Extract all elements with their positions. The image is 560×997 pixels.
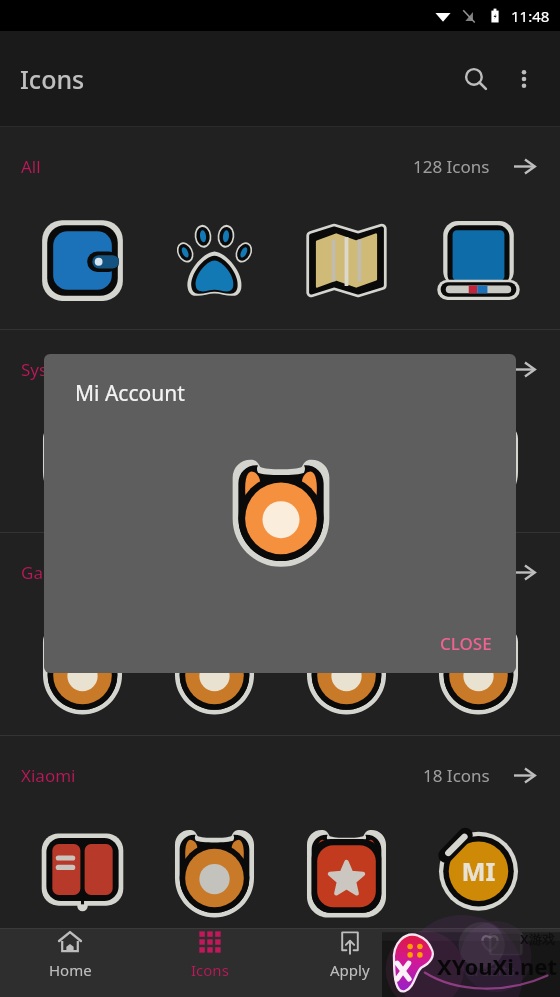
staticText: XYouXi.net: [437, 951, 557, 981]
other: Open Xiaomi: [513, 764, 536, 787]
staticText: Xiaomi: [21, 764, 76, 787]
button[interactable]: More options: [500, 55, 548, 103]
button[interactable]: Home: [0, 929, 140, 980]
staticText: 18 Icons: [423, 764, 490, 787]
button[interactable]: [148, 815, 280, 917]
button[interactable]: Apply: [280, 929, 420, 980]
button[interactable]: [148, 409, 280, 511]
staticText: Credits: [465, 960, 515, 980]
button[interactable]: [280, 815, 412, 917]
button[interactable]: CLOSE: [430, 624, 502, 663]
button[interactable]: Xiaomi: [0, 736, 560, 815]
button[interactable]: [148, 206, 280, 308]
button[interactable]: [412, 409, 544, 511]
staticText: Icons: [20, 62, 85, 96]
button[interactable]: [412, 206, 544, 308]
button[interactable]: [280, 409, 412, 511]
staticText: System: [21, 358, 79, 381]
button[interactable]: [280, 612, 412, 714]
staticText: Mi Account: [75, 379, 185, 408]
staticText: X游戏: [520, 930, 555, 948]
button[interactable]: Credits: [420, 929, 560, 980]
staticText: 11:48: [511, 6, 550, 26]
button[interactable]: [412, 815, 544, 917]
other: Open System: [513, 358, 536, 381]
button[interactable]: System: [0, 330, 560, 409]
staticText: Apply: [330, 960, 370, 980]
button[interactable]: All: [0, 127, 560, 206]
button[interactable]: Games: [0, 533, 560, 612]
button[interactable]: [16, 815, 148, 917]
staticText: Games: [21, 561, 77, 584]
button[interactable]: Icons: [140, 929, 280, 980]
button[interactable]: [148, 612, 280, 714]
other: Open Games: [513, 561, 536, 584]
button[interactable]: [16, 409, 148, 511]
button[interactable]: [16, 206, 148, 308]
button[interactable]: [412, 612, 544, 714]
button[interactable]: Search: [452, 55, 500, 103]
staticText: 128 Icons: [413, 155, 490, 178]
button[interactable]: [280, 206, 412, 308]
staticText: All: [21, 155, 41, 178]
staticText: Icons: [191, 960, 229, 980]
other: Open All: [513, 155, 536, 178]
button[interactable]: [16, 612, 148, 714]
staticText: CLOSE: [440, 632, 492, 655]
staticText: Home: [49, 960, 92, 980]
